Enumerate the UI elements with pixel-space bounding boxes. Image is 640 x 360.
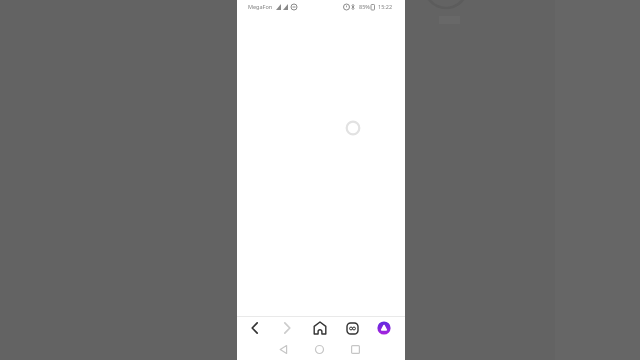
button[interactable] [245,318,265,338]
button[interactable] [374,318,394,338]
button[interactable] [310,318,330,338]
staticText: 15:22 [378,3,393,10]
staticText: 85% [359,3,370,10]
button[interactable] [277,318,297,338]
button[interactable] [342,318,362,338]
staticText: MegaFon [248,3,273,10]
button[interactable] [276,342,290,356]
button[interactable] [312,342,326,356]
button[interactable] [348,342,362,356]
